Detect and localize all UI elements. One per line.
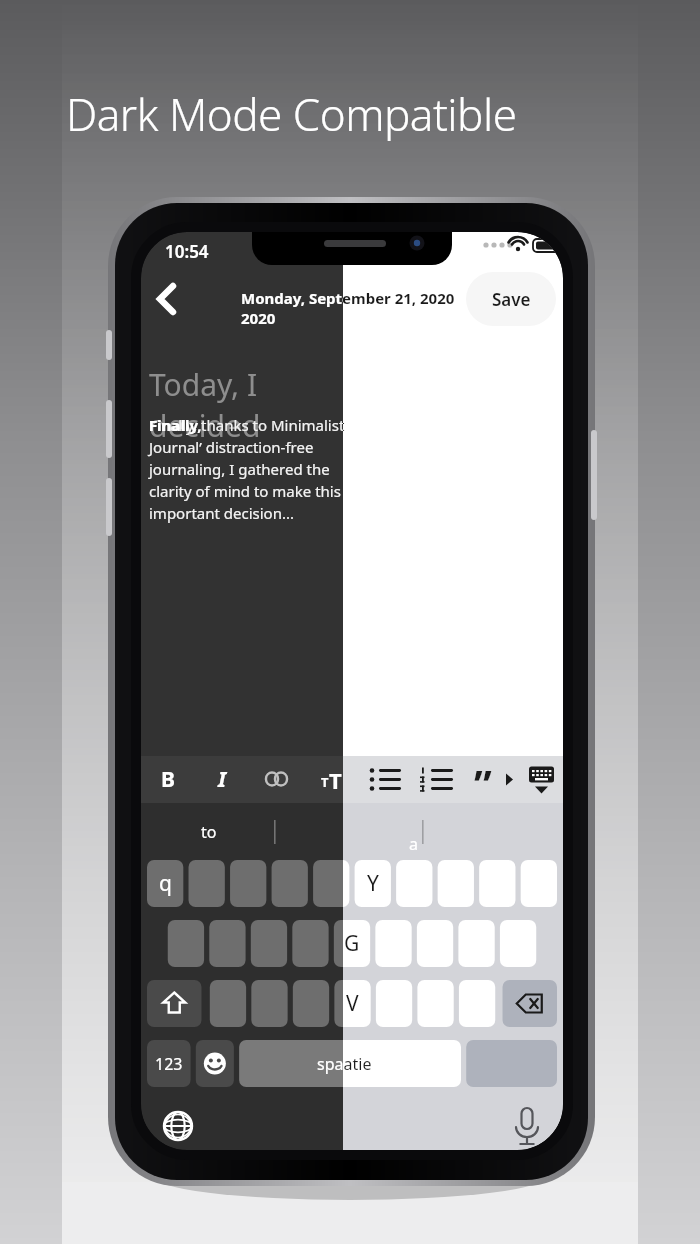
staticText: 10:54 (165, 240, 209, 263)
button[interactable]: t (313, 860, 349, 907)
button[interactable]: Text size (308, 760, 354, 800)
button[interactable]: Back (145, 272, 197, 326)
button[interactable]: r (272, 860, 308, 907)
staticText: spatie (317, 1053, 343, 1075)
staticText: q (159, 869, 172, 898)
button[interactable]: return (466, 1040, 557, 1087)
button[interactable]: to (145, 808, 273, 856)
button[interactable]: Emoji (196, 1040, 234, 1087)
button[interactable]: Italic (200, 758, 244, 800)
staticText: I (218, 765, 227, 794)
button[interactable]: Z (210, 980, 246, 1027)
button[interactable]: a (168, 920, 204, 967)
button[interactable]: K (458, 920, 494, 967)
button[interactable]: Quote (468, 758, 508, 800)
staticText: ” (474, 756, 492, 810)
staticText: to (201, 821, 217, 843)
staticText: Finally, thanks to Minimalist Journal’ d… (149, 415, 343, 524)
button[interactable]: B (376, 980, 412, 1027)
staticText: Today, I decided (343, 364, 369, 446)
staticText: Finally, thanks to Minimalist Journal’ d… (343, 415, 369, 524)
button[interactable]: e (230, 860, 266, 907)
button[interactable]: Change keyboard language (156, 1104, 202, 1150)
button[interactable]: V (334, 980, 370, 1027)
staticText: Monday, September 21, 2020 (241, 288, 343, 328)
staticText: G (344, 929, 360, 958)
button[interactable]: Shift (147, 980, 201, 1027)
button[interactable]: C (293, 980, 329, 1027)
staticText: V (346, 989, 359, 1018)
button[interactable]: w (189, 860, 225, 907)
button[interactable]: G (334, 920, 370, 967)
button[interactable]: Dictate (505, 1100, 551, 1150)
button[interactable]: L (500, 920, 536, 967)
button[interactable]: Hide keyboard (524, 758, 564, 800)
staticText: T (321, 773, 329, 791)
button[interactable]: a (277, 808, 421, 856)
staticText: T (329, 765, 342, 795)
staticText: Dark Mode Compatible (66, 84, 517, 144)
button[interactable] (190, 272, 470, 326)
staticText: a (409, 833, 418, 855)
button[interactable]: H (375, 920, 411, 967)
button[interactable]: Backspace (503, 980, 557, 1027)
staticText: Finally, (149, 415, 229, 435)
button[interactable]: Save (466, 272, 556, 326)
button[interactable]: spatie (239, 1040, 461, 1087)
staticText: 123 (155, 1053, 183, 1075)
button[interactable]: Y (355, 860, 391, 907)
button[interactable]: I (438, 860, 474, 907)
button[interactable]: d (251, 920, 287, 967)
button[interactable]: M (459, 980, 495, 1027)
button[interactable]: Numbered list (414, 758, 454, 800)
button[interactable]: U (396, 860, 432, 907)
button[interactable]: More (498, 758, 526, 800)
button[interactable]: O (479, 860, 515, 907)
button[interactable]: 123 (147, 1040, 191, 1087)
button[interactable]: Bold (146, 758, 190, 800)
button[interactable]: J (417, 920, 453, 967)
button[interactable]: X (251, 980, 287, 1027)
button[interactable]: s (209, 920, 245, 967)
button[interactable]: Insert link (256, 760, 298, 800)
staticText: Monday, September 21, 2020 (343, 288, 461, 308)
staticText: B (161, 765, 175, 794)
button[interactable]: N (417, 980, 453, 1027)
button[interactable]: Bulleted list (362, 758, 402, 800)
button[interactable]: P (521, 860, 557, 907)
staticText: spatie (343, 1053, 372, 1075)
staticText: Today, I decided (149, 364, 343, 446)
button[interactable]: f (292, 920, 328, 967)
staticText: Save (492, 288, 531, 311)
staticText: Y (367, 869, 379, 898)
button[interactable]: q (147, 860, 183, 907)
